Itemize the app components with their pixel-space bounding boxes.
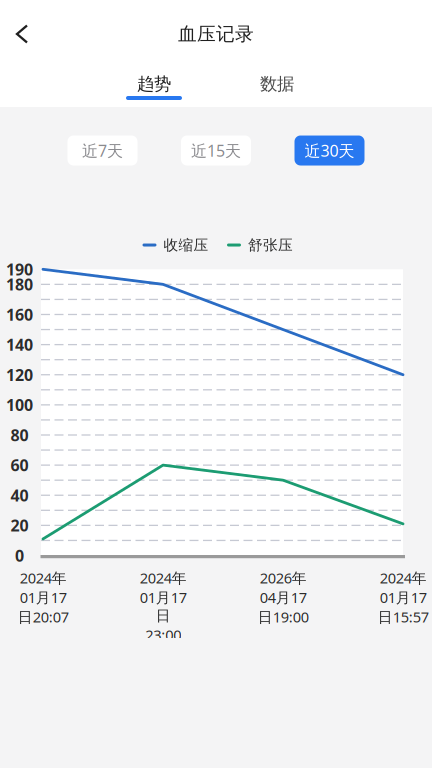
staticText: 60: [10, 454, 28, 476]
staticText: 2024年 01月17 日 23:00: [139, 568, 186, 644]
button[interactable]: 近7天: [67, 135, 137, 165]
staticText: 40: [10, 485, 28, 506]
staticText: 20: [10, 515, 28, 536]
staticText: 2026年 04月17 日19:00: [257, 568, 308, 626]
staticText: 140: [6, 334, 33, 355]
staticText: 收缩压: [163, 236, 208, 254]
button[interactable]: 数据: [216, 67, 338, 108]
button[interactable]: 返回: [4, 12, 40, 55]
staticText: 0: [15, 545, 24, 566]
staticText: 舒张压: [248, 236, 293, 254]
staticText: 2024年 01月17 日15:57: [377, 568, 428, 626]
staticText: 190: [6, 259, 33, 280]
staticText: 趋势: [137, 73, 171, 95]
button[interactable]: 近15天: [181, 135, 251, 165]
staticText: 近15天: [191, 140, 241, 161]
staticText: 120: [6, 364, 33, 385]
staticText: 血压记录: [178, 22, 254, 45]
staticText: 近30天: [304, 140, 354, 161]
staticText: 2024年 01月17 日20:07: [17, 568, 68, 626]
button[interactable]: 趋势: [93, 67, 215, 108]
staticText: 100: [6, 394, 33, 415]
staticText: 数据: [260, 73, 294, 95]
button[interactable]: 近30天: [294, 135, 364, 165]
staticText: 80: [10, 424, 28, 446]
staticText: 近7天: [82, 140, 123, 161]
staticText: 160: [6, 304, 33, 325]
staticText: 180: [6, 274, 33, 295]
